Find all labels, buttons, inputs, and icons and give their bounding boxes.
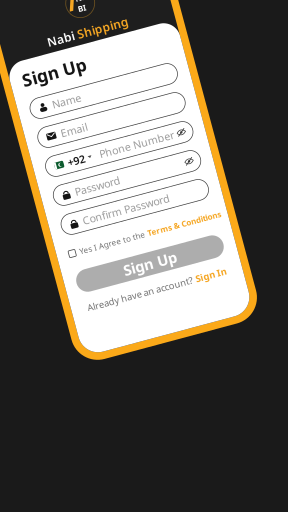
button[interactable]: Sign In xyxy=(156,288,191,300)
staticText: Confirm Password xyxy=(65,202,155,216)
staticText: Name xyxy=(65,82,95,96)
button[interactable]: Yes I Agree to the xyxy=(43,232,195,243)
staticText: Phone Number xyxy=(98,142,175,156)
staticText: Nabi xyxy=(77,20,105,35)
staticText: +92 xyxy=(65,142,83,156)
button[interactable]: Password xyxy=(43,168,195,189)
staticText: Shipping xyxy=(108,20,161,35)
staticText: Sign In xyxy=(159,288,191,300)
staticText: Sign Up xyxy=(43,46,109,69)
staticText: Password xyxy=(65,172,112,186)
button[interactable]: Email xyxy=(43,108,195,129)
staticText: Terms & Conditions xyxy=(124,232,200,243)
staticText: Sign Up xyxy=(91,258,146,277)
staticText: Email xyxy=(66,112,94,126)
staticText: Yes I Agree to the xyxy=(54,232,122,243)
button[interactable]: +92 xyxy=(43,138,195,159)
button[interactable]: Sign Up xyxy=(43,256,195,279)
button[interactable]: Confirm Password xyxy=(43,198,195,219)
button[interactable]: Name xyxy=(43,78,195,99)
staticText: Already have an account? xyxy=(47,288,156,300)
